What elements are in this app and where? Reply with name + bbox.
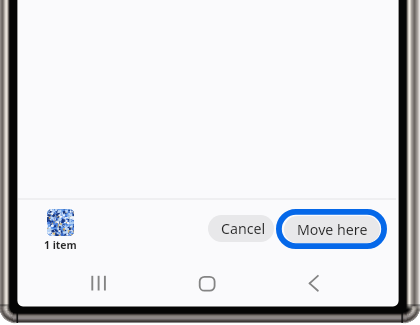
button[interactable]: Home (196, 272, 218, 294)
button[interactable]: Recents (88, 272, 110, 294)
button[interactable]: Cancel (208, 215, 274, 242)
button[interactable]: Selected item thumbnail (47, 209, 74, 236)
staticText: Cancel (221, 219, 266, 238)
button[interactable]: Move here (276, 209, 387, 249)
staticText: 1 item (44, 238, 77, 252)
staticText: Move here (297, 220, 368, 239)
button[interactable]: Back (303, 272, 325, 294)
